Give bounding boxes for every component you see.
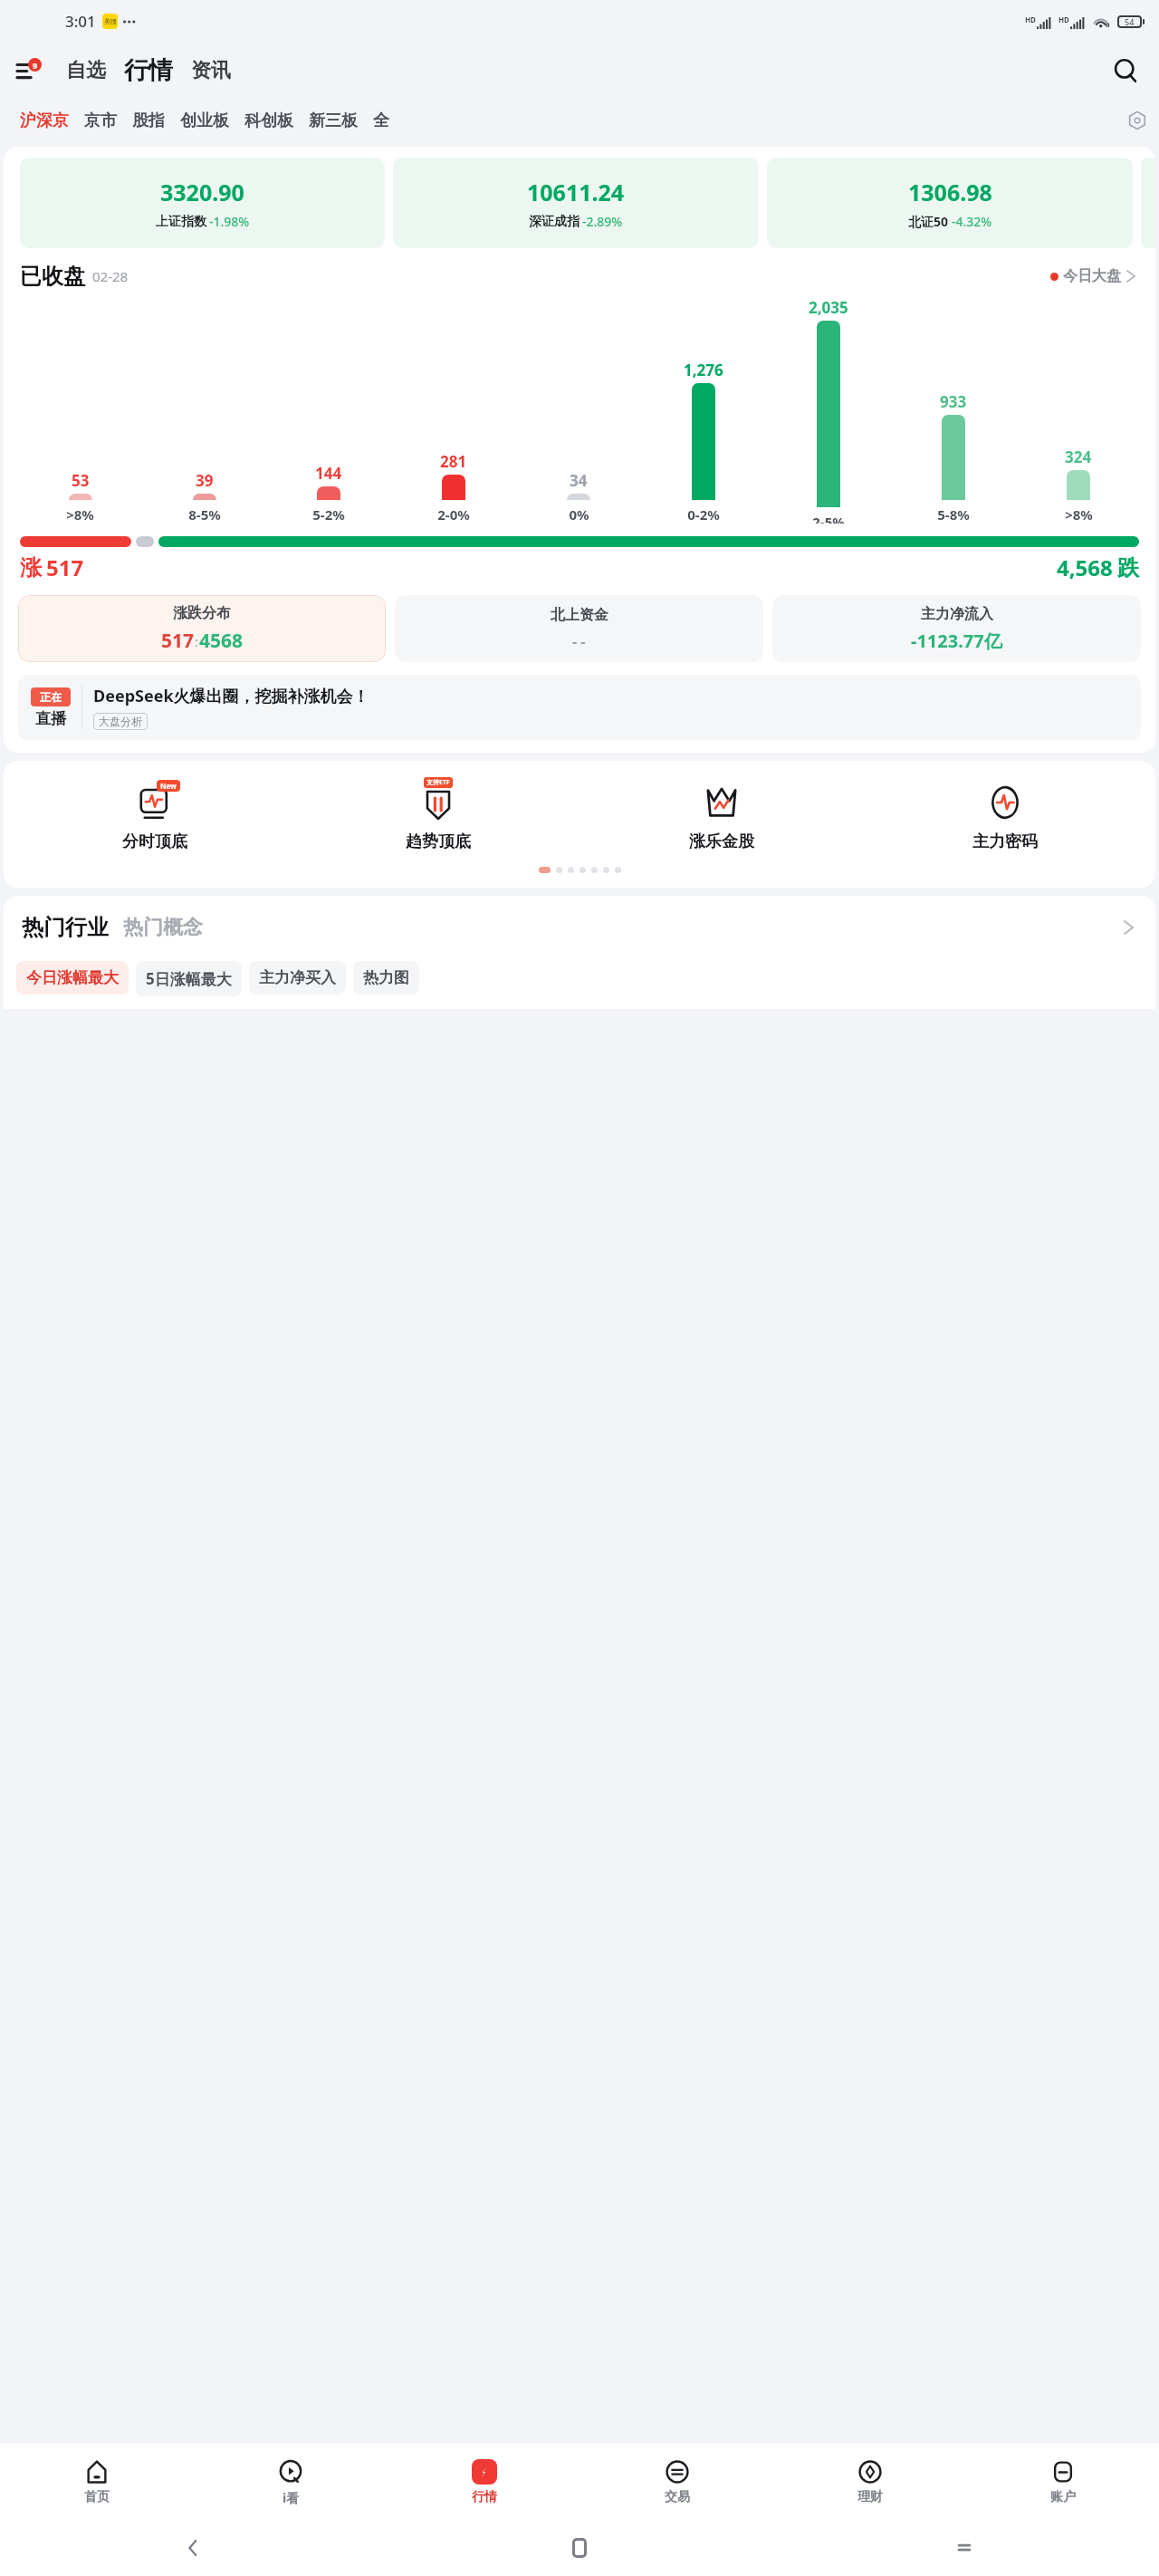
staticText: 北证50 (908, 213, 949, 230)
staticText: 4568 (199, 628, 244, 654)
staticText: 直播 (35, 709, 66, 728)
staticText: 2-5% (812, 513, 845, 524)
staticText: 39 (196, 470, 214, 491)
staticText: 517 (161, 628, 195, 654)
staticText: HD (1058, 14, 1069, 24)
staticText: HD (1025, 14, 1036, 24)
button[interactable]: 支持ETF (296, 775, 579, 856)
staticText: i看 (283, 2489, 300, 2506)
staticText: 34 (570, 470, 588, 491)
staticText: 上证指数 (156, 214, 206, 230)
button[interactable]: 3320.90 (20, 158, 385, 248)
button[interactable]: 涨跌分布 (18, 595, 386, 662)
staticText: 自选 (66, 58, 106, 83)
button[interactable]: 主力净流入 (772, 595, 1141, 662)
staticText: DeepSeek火爆出圈，挖掘补涨机会！ (93, 685, 369, 707)
button[interactable]: 资讯 (188, 54, 234, 87)
staticText: 主力净流入 (921, 605, 993, 623)
staticText: 已收盘 (20, 263, 85, 290)
staticText: 京市 (84, 111, 117, 131)
staticText: 沪深京 (20, 111, 69, 131)
staticText: New (160, 781, 177, 791)
button[interactable]: 行情 (121, 52, 176, 90)
staticText: 主力净买入 (259, 968, 336, 987)
staticText: 9 (33, 60, 38, 71)
staticText: -4.32% (952, 213, 992, 230)
staticText: 涨跌分布 (173, 604, 231, 622)
staticText: 933 (940, 391, 967, 412)
staticText: 144 (315, 463, 342, 484)
button[interactable]: 股指 (127, 105, 170, 137)
staticText: 2,035 (809, 297, 848, 318)
button[interactable]: 10611.24 (393, 158, 759, 248)
button[interactable]: i看 (194, 2444, 388, 2520)
staticText: 324 (1065, 447, 1092, 467)
button[interactable]: Menu (16, 55, 47, 86)
staticText: 分时顶底 (122, 831, 187, 852)
staticText: 跌 (1117, 554, 1139, 582)
button[interactable]: 新三板 (303, 105, 363, 137)
button[interactable]: More (1117, 917, 1139, 938)
staticText: 主力密码 (972, 831, 1038, 852)
staticText: 股指 (132, 111, 165, 131)
staticText: 0-2% (687, 505, 720, 524)
staticText: 54 (1125, 16, 1135, 27)
staticText: 4,568 (1057, 553, 1113, 582)
staticText: 02-28 (92, 267, 129, 285)
button[interactable]: 今日涨幅最大 (16, 961, 129, 995)
button[interactable]: 热力图 (353, 961, 419, 995)
staticText: 热力图 (363, 968, 409, 987)
button[interactable]: 自选 (63, 54, 109, 87)
staticText: 517 (46, 553, 84, 582)
staticText: 全 (373, 111, 389, 131)
button[interactable]: 今日大盘 (1047, 264, 1139, 289)
button[interactable]: 账户 (966, 2444, 1159, 2520)
button[interactable]: 主力密码 (863, 775, 1146, 856)
button[interactable]: 创业板 (175, 105, 235, 137)
staticText: 1,276 (684, 360, 723, 380)
staticText: -2.89% (582, 213, 623, 230)
button[interactable]: 涨乐金股 (579, 775, 863, 856)
staticText: 新三板 (309, 111, 358, 131)
button[interactable]: 首页 (0, 2444, 194, 2520)
button[interactable]: More categories (1125, 108, 1150, 133)
button[interactable]: 热门行业 (20, 912, 110, 943)
staticText: -1.98% (209, 213, 250, 230)
button[interactable]: 京市 (79, 105, 122, 137)
button[interactable]: 北上资金 (395, 595, 763, 662)
staticText: 行情 (472, 2489, 497, 2505)
button[interactable]: 主力净买入 (249, 961, 346, 995)
staticText: -1123.77亿 (911, 629, 1002, 653)
staticText: 深证成指 (529, 214, 579, 230)
button[interactable]: 5日涨幅最大 (136, 961, 242, 996)
staticText: 53 (72, 470, 90, 491)
staticText: 创业板 (180, 111, 229, 131)
button[interactable]: 理财 (773, 2444, 966, 2520)
staticText: 1306.98 (908, 177, 992, 207)
button[interactable]: 正在 (18, 675, 1141, 740)
staticText: 5-8% (937, 505, 970, 524)
button[interactable]: 全 (368, 105, 395, 137)
staticText: 北上资金 (551, 606, 608, 624)
staticText: >8% (1065, 505, 1093, 524)
staticText: 首页 (84, 2489, 110, 2505)
button[interactable]: 沪深京 (14, 105, 74, 137)
staticText: : (195, 632, 199, 650)
staticText: 趋势顶底 (406, 831, 471, 852)
staticText: - - (572, 631, 586, 651)
staticText: 今日大盘 (1063, 267, 1121, 285)
staticText: 3:01 (65, 11, 96, 32)
staticText: 0% (569, 505, 589, 524)
button[interactable]: 热门概念 (121, 913, 205, 942)
staticText: 涨乐金股 (689, 831, 754, 852)
button[interactable]: 科创板 (239, 105, 299, 137)
button[interactable]: Search (1108, 53, 1143, 88)
staticText: 8-5% (188, 505, 221, 524)
button[interactable]: New (13, 775, 296, 856)
button[interactable]: 交易 (580, 2444, 773, 2520)
button[interactable]: 行情 (388, 2444, 580, 2520)
button[interactable]: 1306.98 (767, 158, 1133, 248)
staticText: 2-0% (437, 505, 470, 524)
staticText: 3320.90 (160, 177, 244, 207)
staticText: 热门行业 (22, 914, 109, 941)
